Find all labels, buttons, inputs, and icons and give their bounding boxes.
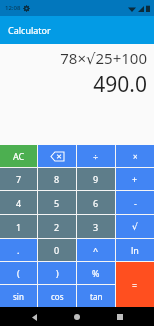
staticText: 3	[93, 221, 99, 233]
staticText: ×	[133, 151, 138, 162]
staticText: (	[17, 267, 20, 279]
button[interactable]: )	[38, 262, 76, 284]
staticText: +	[132, 173, 138, 185]
staticText: )	[56, 267, 59, 279]
button[interactable]: Home	[68, 308, 86, 326]
button[interactable]: +	[116, 168, 154, 190]
staticText: 78×√25+100	[7, 48, 147, 68]
staticText: ÷	[93, 150, 99, 162]
button[interactable]: (	[0, 262, 37, 284]
button[interactable]: AC	[0, 145, 37, 167]
button[interactable]: ln	[116, 239, 154, 261]
button[interactable]: Recent apps	[111, 308, 129, 326]
staticText: tan	[90, 291, 103, 302]
staticText: 7	[16, 173, 22, 185]
staticText: √	[132, 222, 138, 232]
button[interactable]: 2	[38, 215, 76, 238]
button[interactable]: ×	[116, 145, 154, 167]
button[interactable]: .	[0, 239, 37, 261]
button[interactable]: 0	[38, 239, 76, 261]
staticText: ln	[131, 244, 139, 256]
button[interactable]: 3	[77, 215, 115, 238]
button[interactable]: √	[116, 215, 154, 238]
staticText: -	[134, 197, 137, 209]
staticText: 2	[54, 221, 60, 233]
button[interactable]: 1	[0, 215, 37, 238]
button[interactable]: =	[116, 262, 154, 307]
button[interactable]: -	[116, 191, 154, 214]
staticText: 6	[93, 197, 99, 209]
staticText: 0	[54, 244, 60, 256]
button[interactable]: tan	[77, 285, 115, 307]
button[interactable]: ÷	[77, 145, 115, 167]
staticText: ^	[93, 244, 99, 256]
staticText: .	[17, 244, 20, 256]
button[interactable]: 4	[0, 191, 37, 214]
staticText: 12:08	[5, 4, 21, 12]
button[interactable]: cos	[38, 285, 76, 307]
staticText: %	[92, 267, 100, 279]
button[interactable]: 5	[38, 191, 76, 214]
button[interactable]: ^	[77, 239, 115, 261]
staticText: cos	[51, 291, 64, 302]
staticText: 4	[16, 197, 22, 209]
staticText: sin	[13, 291, 24, 302]
button[interactable]: 6	[77, 191, 115, 214]
button[interactable]: 9	[77, 168, 115, 190]
staticText: 9	[93, 173, 99, 185]
button[interactable]: 8	[38, 168, 76, 190]
staticText: 8	[54, 173, 60, 185]
button[interactable]: Backspace	[38, 145, 76, 167]
staticText: AC	[13, 150, 25, 162]
staticText: Calculator	[8, 24, 51, 36]
staticText: 1	[16, 221, 22, 233]
button[interactable]: Back	[25, 308, 43, 326]
staticText: 490.0	[7, 70, 147, 99]
staticText: 5	[54, 197, 60, 209]
staticText: =	[132, 279, 138, 291]
button[interactable]: %	[77, 262, 115, 284]
button[interactable]: 7	[0, 168, 37, 190]
button[interactable]: sin	[0, 285, 37, 307]
